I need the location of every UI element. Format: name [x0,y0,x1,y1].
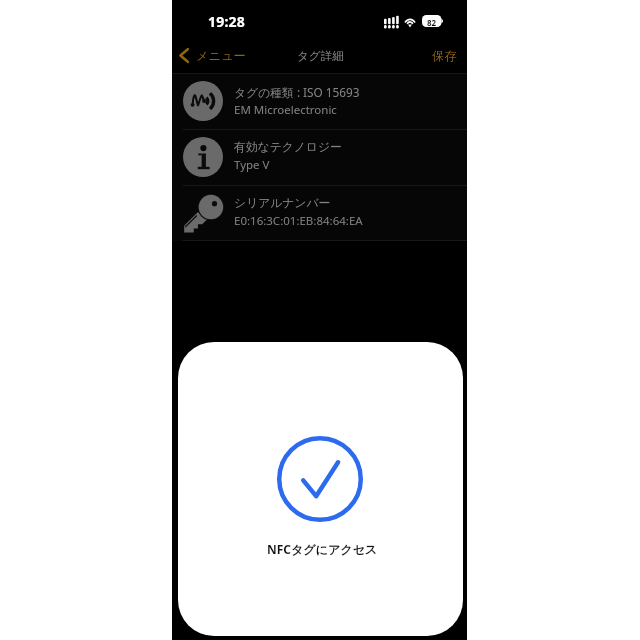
button[interactable]: NFC [172,74,467,129]
staticText: NFCタグにアクセス [267,541,378,557]
staticText: Type V [234,157,270,173]
staticText: 82 [427,17,437,28]
staticText: メニュー [196,48,246,63]
staticText: タグ詳細 [297,49,344,64]
other: Info [183,137,223,177]
other: Serial number [183,193,223,233]
staticText: 19:28 [208,12,245,31]
staticText: 有効なテクノロジー [234,140,342,155]
staticText: タグの種類 : ISO 15693 [234,84,360,100]
button[interactable]: Info [172,130,467,185]
staticText: EM Microelectronic [234,102,337,118]
other: Back [179,48,189,63]
other: NFC [183,81,223,121]
button[interactable]: Back [176,41,252,69]
button[interactable]: Serial number [172,186,467,241]
staticText: E0:16:3C:01:EB:84:64:EA [234,213,363,229]
staticText: シリアルナンバー [234,196,331,211]
staticText: 保存 [432,48,457,63]
button[interactable]: 保存 [424,41,465,69]
